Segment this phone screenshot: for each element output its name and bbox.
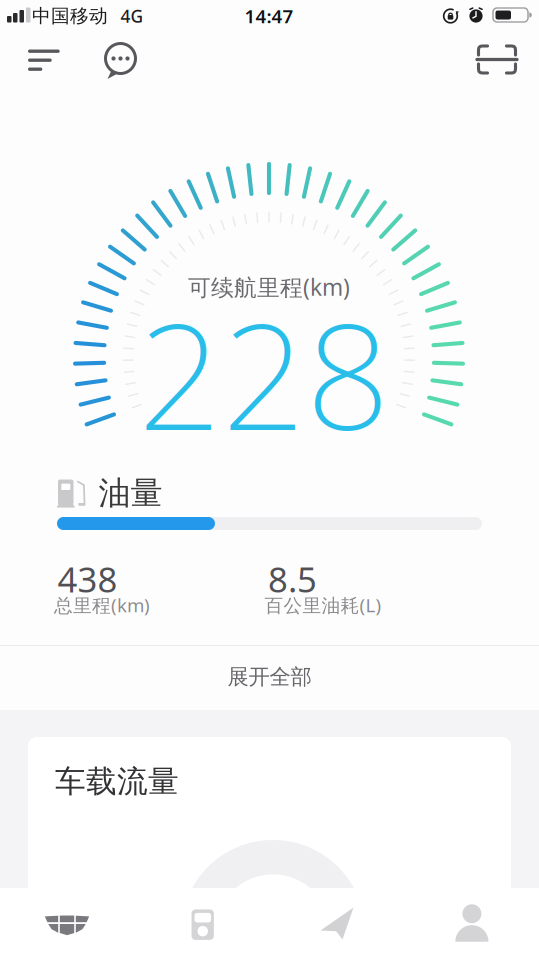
button[interactable]: 车载流量 — [28, 737, 511, 905]
staticText: 车载流量 — [55, 763, 179, 800]
staticText: 百公里油耗(L) — [264, 593, 381, 617]
button[interactable]: Messages — [103, 43, 139, 80]
staticText: 油量 — [98, 473, 162, 513]
button[interactable]: Remote control — [191, 909, 214, 940]
button[interactable]: Profile — [455, 904, 488, 942]
staticText: 14:47 — [244, 4, 293, 28]
button[interactable]: 展开全部 — [169, 657, 369, 697]
staticText: 8.5 — [268, 556, 317, 602]
button[interactable]: Location — [320, 907, 353, 939]
staticText: 展开全部 — [227, 664, 311, 690]
button[interactable]: Car — [44, 914, 90, 936]
staticText: 可续航里程(km) — [188, 272, 350, 302]
staticText: 4G — [120, 4, 143, 27]
staticText: 总里程(km) — [54, 593, 150, 617]
staticText: 438 — [57, 556, 117, 602]
staticText: 228 — [138, 276, 390, 470]
button[interactable]: Menu — [28, 49, 60, 71]
staticText: 中国移动 — [32, 4, 108, 27]
button[interactable]: Scan — [477, 44, 517, 74]
